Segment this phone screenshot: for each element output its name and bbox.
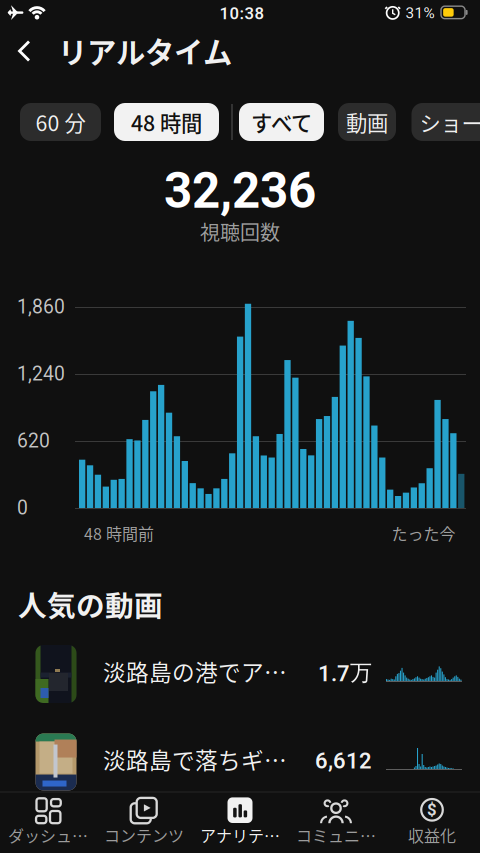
button[interactable]: $ — [384, 794, 480, 852]
staticText: 収益化 — [408, 823, 456, 847]
staticText: 動画 — [346, 107, 388, 137]
button[interactable]: すべて — [239, 103, 324, 141]
staticText: 48 時間前 — [84, 521, 154, 545]
staticText: 60 分 — [35, 107, 85, 137]
staticText: コミュニ… — [296, 823, 376, 847]
button[interactable]: コミュニ… — [288, 794, 384, 852]
staticText: ダッシュ… — [8, 823, 88, 847]
staticText: 48 時間 — [131, 107, 202, 137]
staticText: 1,860 — [17, 296, 65, 318]
button[interactable]: 動画 — [338, 103, 396, 141]
button[interactable]: アナリテ… — [192, 794, 288, 852]
button[interactable]: 淡路島の港でア… — [20, 635, 462, 713]
staticText: たった今 — [391, 521, 455, 545]
button[interactable]: 48 時間 — [114, 103, 219, 141]
button[interactable]: コンテンツ — [96, 794, 192, 852]
staticText: 1.7万 — [318, 659, 372, 687]
staticText: 視聴回数 — [200, 217, 280, 246]
staticText: リアルタイム — [58, 29, 232, 72]
staticText: 31% — [405, 4, 434, 22]
staticText: 0 — [17, 497, 28, 519]
staticText: 10:38 — [219, 4, 264, 23]
staticText: 人気の動画 — [18, 583, 163, 625]
staticText: 32,236 — [164, 162, 316, 220]
staticText: ショート — [419, 107, 480, 137]
staticText: 620 — [17, 430, 50, 452]
staticText: アナリテ… — [200, 823, 280, 847]
button[interactable]: ショート — [411, 103, 480, 141]
staticText: 1,240 — [17, 363, 65, 385]
staticText: 淡路島で落ちギ… — [103, 743, 287, 775]
staticText: 淡路島の港でア… — [103, 655, 287, 687]
button[interactable]: 淡路島で落ちギ… — [20, 723, 462, 801]
button[interactable]: 60 分 — [20, 103, 101, 141]
button[interactable]: Back — [2, 30, 46, 72]
staticText: 6,612 — [315, 748, 372, 774]
staticText: $ — [427, 800, 437, 819]
button[interactable]: ダッシュ… — [0, 794, 96, 852]
staticText: コンテンツ — [104, 823, 184, 847]
staticText: すべて — [251, 107, 312, 137]
